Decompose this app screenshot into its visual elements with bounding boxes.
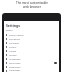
- button[interactable]: Languages: [4, 69, 59, 72]
- staticText: Theme: [9, 50, 17, 53]
- button[interactable]: Payments: [4, 41, 59, 45]
- staticText: Privacy: [9, 46, 17, 49]
- staticText: Payments: [9, 42, 20, 45]
- staticText: Homepage: [9, 58, 21, 61]
- staticText: web browser: [23, 5, 41, 9]
- staticText: Settings: [6, 23, 20, 28]
- staticText: The most customisable: [16, 1, 48, 5]
- other: Toggle: [54, 62, 57, 64]
- button[interactable]: Downloads: [4, 65, 59, 69]
- staticText: Basics: [6, 29, 13, 32]
- button[interactable]: Dark mode: [4, 61, 59, 65]
- button[interactable]: Privacy: [4, 45, 59, 49]
- button[interactable]: Theme: [4, 49, 59, 53]
- button[interactable]: Toolbar: [4, 53, 59, 57]
- staticText: Search engine: [9, 34, 24, 37]
- staticText: Dark mode: [9, 62, 21, 65]
- staticText: Downloads: [9, 66, 21, 69]
- staticText: Languages: [9, 69, 21, 72]
- button[interactable]: Homepage: [4, 57, 59, 61]
- staticText: Toolbar: [9, 54, 17, 57]
- button[interactable]: Search engine: [4, 33, 59, 37]
- staticText: Passwords: [9, 38, 20, 41]
- button[interactable]: Passwords: [4, 37, 59, 41]
